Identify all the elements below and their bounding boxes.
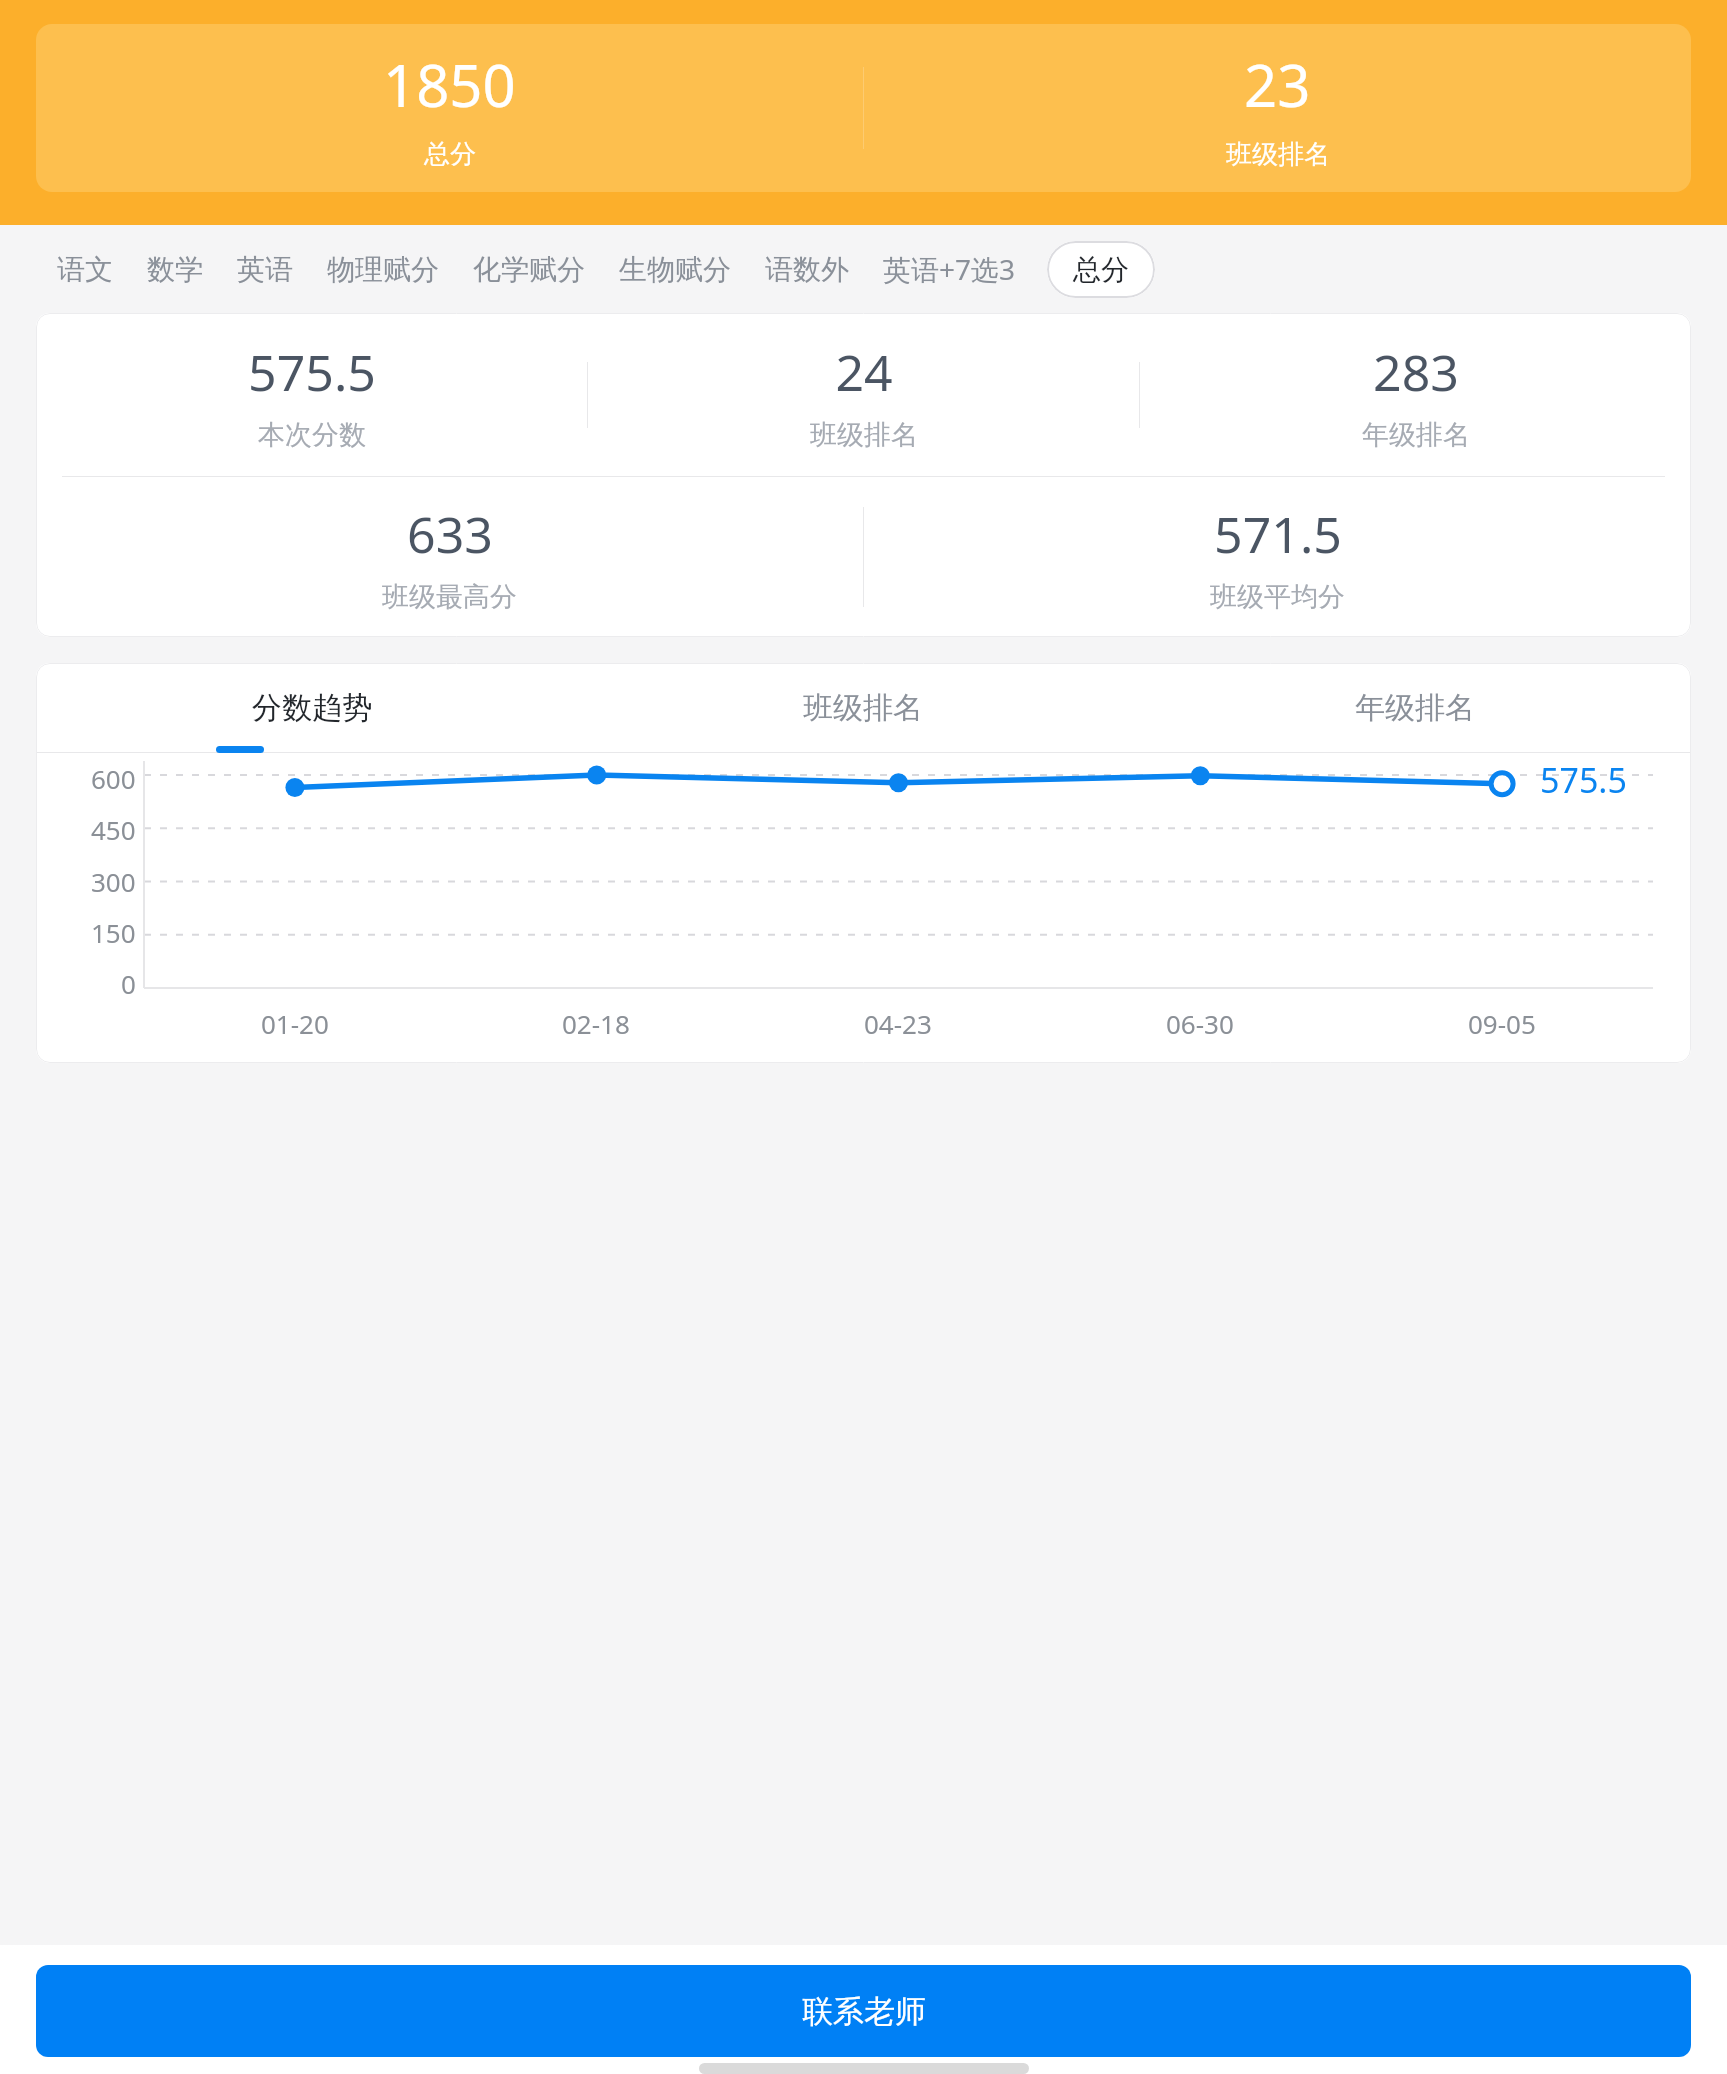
staticText: 450: [91, 812, 136, 847]
staticText: 283: [1373, 338, 1459, 406]
staticText: 数学: [147, 252, 203, 287]
button[interactable]: 语文: [40, 244, 130, 295]
button[interactable]: 633: [36, 500, 863, 614]
staticText: 01-20: [261, 1006, 329, 1041]
staticText: 571.5: [1214, 500, 1342, 568]
staticText: 300: [91, 864, 136, 899]
button[interactable]: 数学: [130, 244, 220, 295]
button[interactable]: 283: [1140, 338, 1691, 452]
staticText: 23: [1244, 45, 1311, 124]
button[interactable]: 物理赋分: [310, 244, 456, 295]
staticText: 班级排名: [803, 689, 923, 727]
staticText: 1850: [383, 45, 516, 124]
staticText: 本次分数: [258, 418, 366, 452]
staticText: 语数外: [765, 252, 849, 287]
button[interactable]: 联系老师: [36, 1965, 1691, 2057]
staticText: 24: [835, 338, 893, 406]
staticText: 09-05: [1468, 1006, 1536, 1041]
staticText: 语文: [57, 252, 113, 287]
button[interactable]: 班级排名: [587, 663, 1139, 753]
button[interactable]: 575.5: [36, 338, 587, 452]
button[interactable]: 571.5: [864, 500, 1691, 614]
staticText: 联系老师: [802, 1992, 926, 2031]
staticText: 班级最高分: [382, 580, 517, 614]
staticText: 633: [407, 500, 493, 568]
button[interactable]: 化学赋分: [456, 244, 602, 295]
staticText: 生物赋分: [619, 252, 731, 287]
button[interactable]: 分数趋势: [36, 663, 587, 753]
button[interactable]: 英语: [220, 244, 310, 295]
staticText: 575.5: [248, 338, 376, 406]
button[interactable]: 总分: [1047, 241, 1155, 298]
staticText: 总分: [1073, 252, 1129, 287]
staticText: 班级排名: [810, 418, 918, 452]
button[interactable]: 生物赋分: [602, 244, 748, 295]
button[interactable]: 语数外: [748, 244, 866, 295]
staticText: 150: [91, 915, 136, 950]
staticText: 06-30: [1166, 1006, 1234, 1041]
button[interactable]: 24: [588, 338, 1139, 452]
button[interactable]: 英语+7选3: [866, 242, 1033, 296]
staticText: 物理赋分: [327, 252, 439, 287]
button[interactable]: 1850: [36, 24, 863, 192]
staticText: 分数趋势: [252, 689, 372, 727]
staticText: 化学赋分: [473, 252, 585, 287]
staticText: 班级排名: [1226, 138, 1330, 171]
staticText: 600: [91, 761, 136, 796]
staticText: 年级排名: [1362, 418, 1470, 452]
staticText: 班级平均分: [1210, 580, 1345, 614]
staticText: 02-18: [562, 1006, 630, 1041]
staticText: 年级排名: [1355, 689, 1475, 727]
staticText: 0: [121, 966, 136, 1001]
staticText: 575.5: [1540, 757, 1627, 803]
button[interactable]: 年级排名: [1139, 663, 1691, 753]
button[interactable]: 23: [864, 24, 1691, 192]
staticText: 英语+7选3: [883, 250, 1016, 288]
staticText: 04-23: [864, 1006, 932, 1041]
staticText: 英语: [237, 252, 293, 287]
staticText: 总分: [424, 138, 476, 171]
